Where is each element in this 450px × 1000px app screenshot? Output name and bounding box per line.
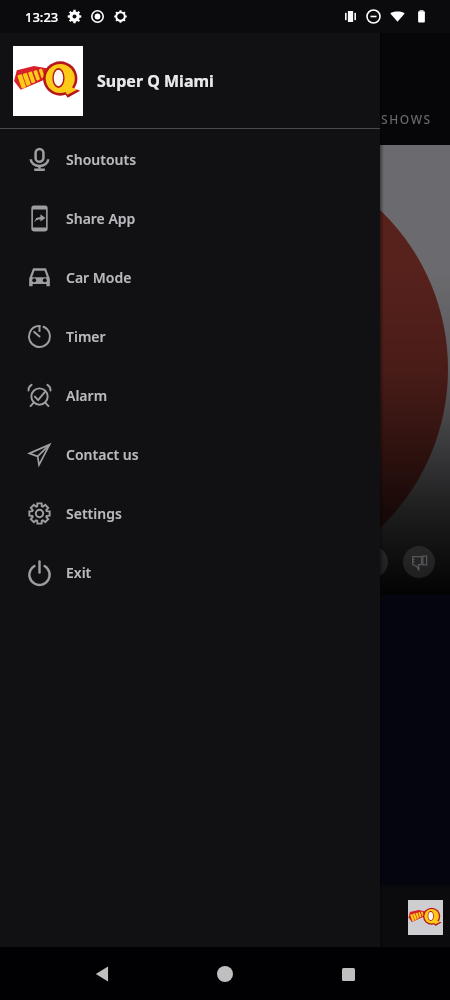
- button[interactable]: Recents: [328, 954, 368, 994]
- button[interactable]: Home: [205, 954, 245, 994]
- staticText: Settings: [66, 504, 122, 523]
- button[interactable]: Exit: [0, 543, 380, 602]
- staticText: Shoutouts: [66, 150, 137, 169]
- button[interactable]: Share App: [0, 189, 380, 248]
- button[interactable]: Contact us: [0, 425, 380, 484]
- staticText: Exit: [66, 563, 92, 582]
- staticText: Alarm: [66, 386, 108, 405]
- button[interactable]: Super Q Miami: [0, 33, 380, 128]
- button[interactable]: SHOWS: [381, 111, 432, 127]
- staticText: Car Mode: [66, 268, 132, 287]
- button[interactable]: Alarm: [0, 366, 380, 425]
- button[interactable]: Shoutouts: [0, 130, 380, 189]
- staticText: SHOWS: [381, 111, 432, 127]
- button[interactable]: Dislike: [404, 547, 434, 577]
- staticText: Super Q Miami: [97, 70, 214, 92]
- staticText: Share App: [66, 209, 136, 228]
- button[interactable]: Timer: [0, 307, 380, 366]
- button[interactable]: Back: [83, 954, 123, 994]
- button[interactable]: Car Mode: [0, 248, 380, 307]
- staticText: Timer: [66, 327, 106, 346]
- staticText: 13:23: [25, 8, 59, 26]
- staticText: Contact us: [66, 445, 139, 464]
- button[interactable]: Settings: [0, 484, 380, 543]
